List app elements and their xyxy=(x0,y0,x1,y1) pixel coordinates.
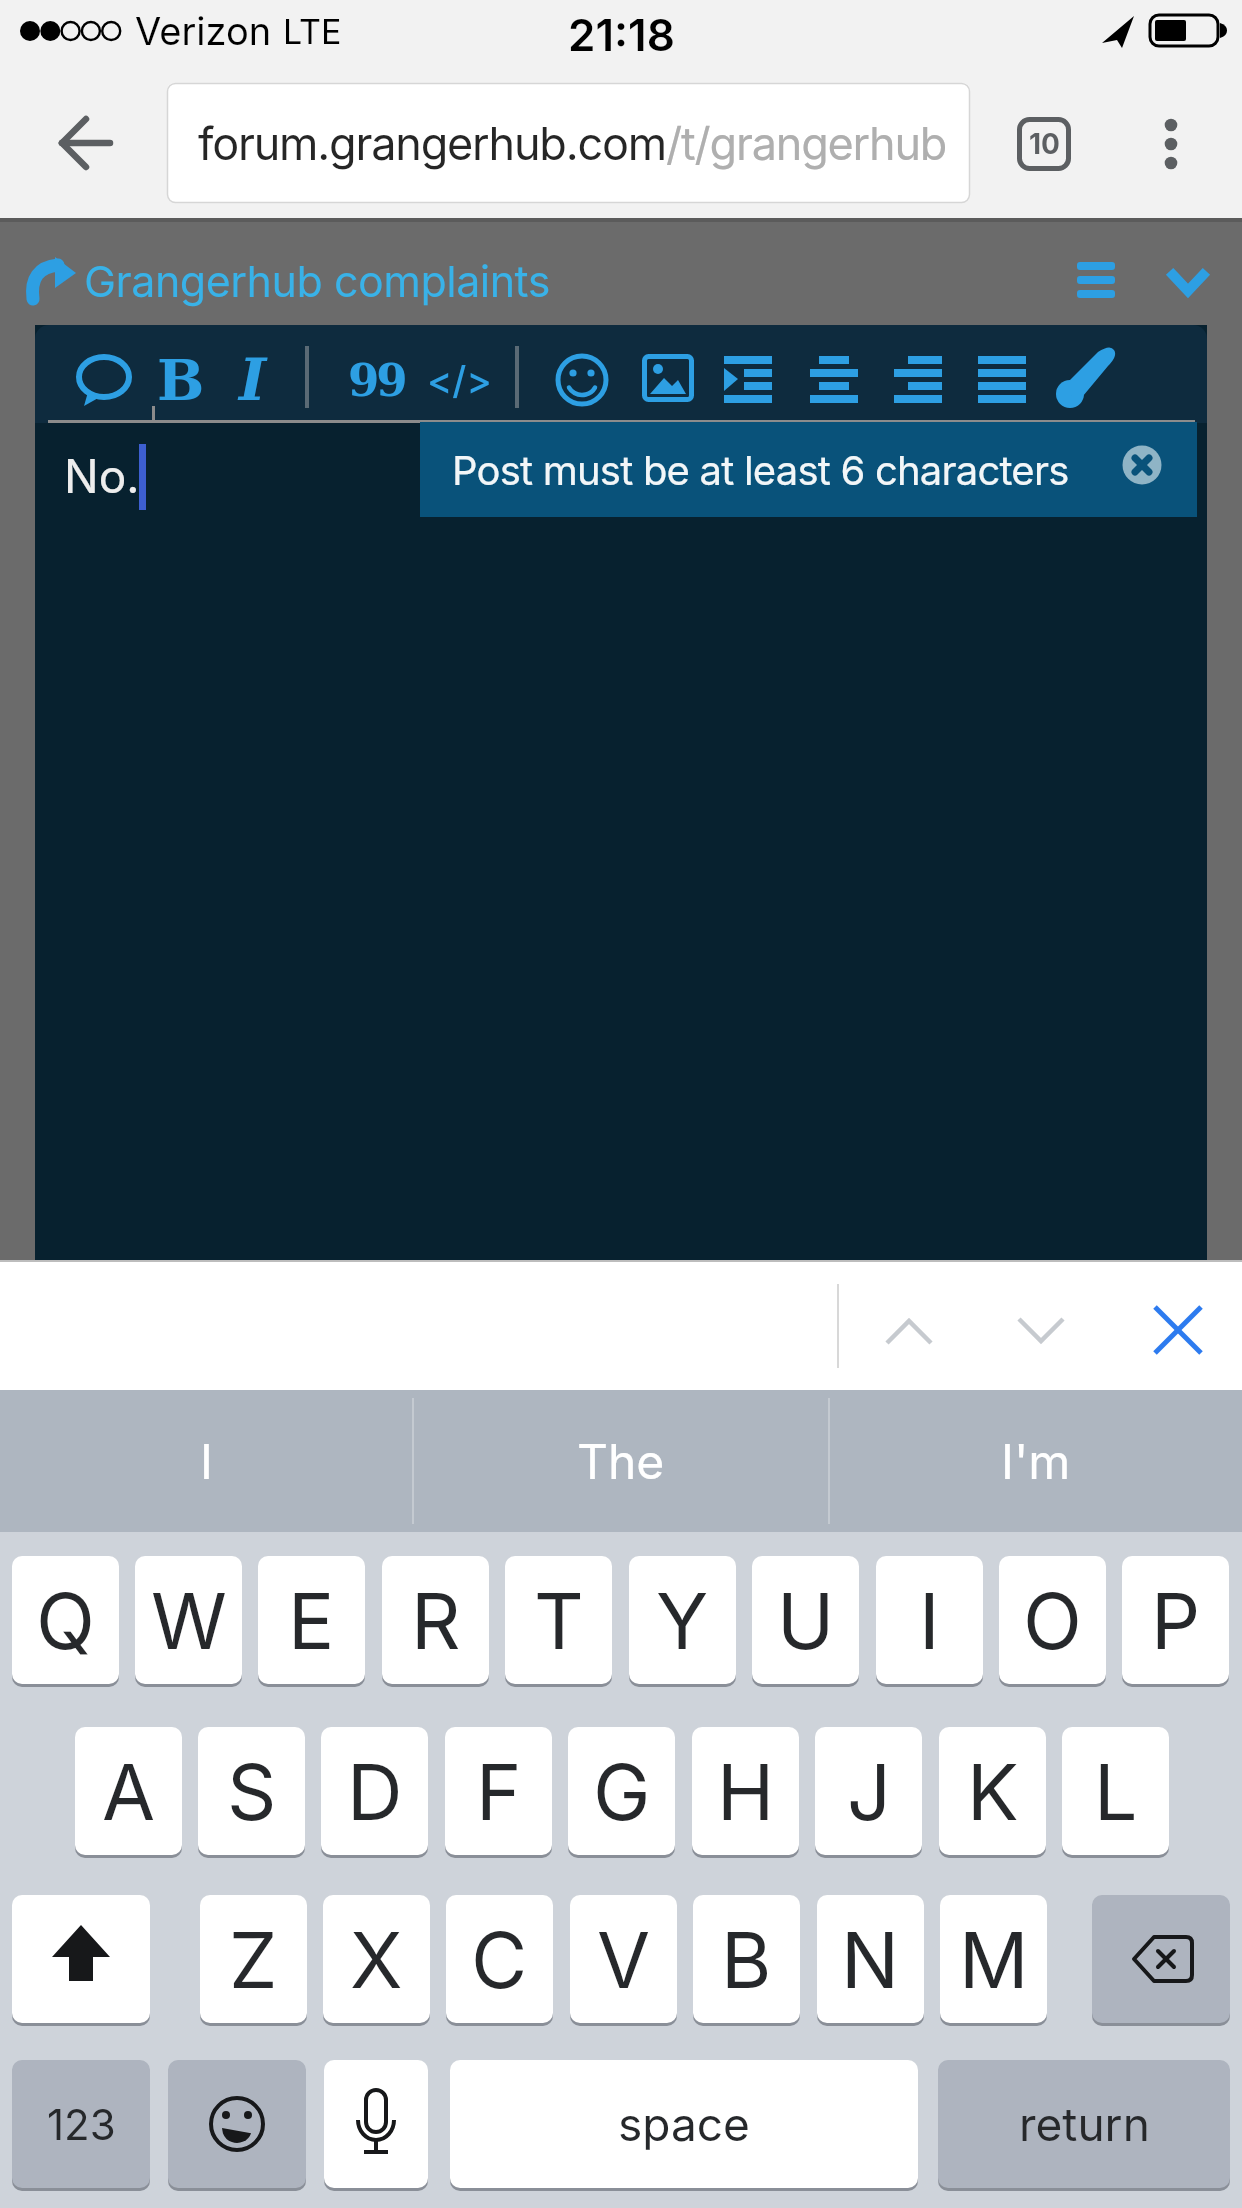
staticText: I xyxy=(200,1432,213,1490)
staticText: O xyxy=(1023,1574,1082,1667)
button[interactable]: I xyxy=(222,346,284,414)
button[interactable] xyxy=(716,346,786,414)
button[interactable] xyxy=(1128,1272,1228,1380)
button[interactable]: P xyxy=(1122,1556,1229,1684)
staticText: B xyxy=(721,1913,772,2006)
staticText: M xyxy=(959,1913,1029,2006)
staticText: G xyxy=(593,1745,651,1838)
staticText: L xyxy=(1094,1745,1138,1838)
button[interactable]: M xyxy=(940,1895,1047,2023)
button[interactable] xyxy=(548,346,616,414)
button[interactable]: O xyxy=(999,1556,1106,1684)
button[interactable]: The xyxy=(414,1390,828,1532)
button[interactable] xyxy=(1110,432,1180,502)
staticText: B xyxy=(157,347,205,413)
button[interactable]: V xyxy=(570,1895,677,2023)
staticText: The xyxy=(577,1432,665,1490)
staticText: W xyxy=(151,1574,227,1667)
staticText: 123 xyxy=(47,2099,116,2150)
staticText: Q xyxy=(36,1574,95,1667)
staticText: Y xyxy=(656,1574,709,1667)
button[interactable]: I'm xyxy=(830,1390,1242,1532)
staticText: A xyxy=(102,1745,156,1838)
button[interactable]: W xyxy=(135,1556,242,1684)
button[interactable] xyxy=(800,346,870,414)
button[interactable]: F xyxy=(445,1727,552,1855)
button[interactable]: T xyxy=(505,1556,612,1684)
staticText: Post must be at least 6 characters xyxy=(452,446,1069,494)
staticText: </> xyxy=(427,357,492,403)
button[interactable] xyxy=(968,346,1038,414)
button[interactable]: S xyxy=(198,1727,305,1855)
staticText: X xyxy=(350,1913,403,2006)
staticText: space xyxy=(618,2096,750,2152)
button[interactable]: G xyxy=(568,1727,675,1855)
button[interactable]: return xyxy=(938,2060,1230,2188)
button[interactable] xyxy=(66,346,138,414)
button[interactable] xyxy=(324,2060,428,2188)
button[interactable] xyxy=(168,2060,306,2188)
button[interactable]: A xyxy=(75,1727,182,1855)
button[interactable]: B xyxy=(150,346,212,414)
button[interactable]: L xyxy=(1062,1727,1169,1855)
staticText: Verizon xyxy=(135,8,272,54)
staticText: V xyxy=(597,1913,651,2006)
button[interactable] xyxy=(1150,246,1230,316)
staticText: LTE xyxy=(283,11,342,52)
staticText: U xyxy=(777,1574,835,1667)
button[interactable]: H xyxy=(692,1727,799,1855)
staticText: J xyxy=(847,1745,891,1838)
button[interactable] xyxy=(40,98,130,188)
button[interactable]: U xyxy=(752,1556,859,1684)
button[interactable]: D xyxy=(321,1727,428,1855)
button[interactable]: 99 xyxy=(340,346,412,414)
button[interactable]: Y xyxy=(629,1556,736,1684)
button[interactable]: N xyxy=(817,1895,924,2023)
button[interactable] xyxy=(1050,340,1126,416)
staticText: K xyxy=(967,1745,1019,1838)
staticText: D xyxy=(347,1745,403,1838)
staticText: E xyxy=(288,1574,335,1667)
button[interactable]: Z xyxy=(200,1895,307,2023)
button[interactable] xyxy=(1092,1895,1230,2023)
button[interactable]: C xyxy=(446,1895,553,2023)
staticText: P xyxy=(1151,1574,1201,1667)
button[interactable]: 123 xyxy=(12,2060,150,2188)
staticText: forum.grangerhub.com xyxy=(198,116,666,170)
button[interactable] xyxy=(992,1272,1092,1380)
staticText: return xyxy=(1019,2096,1150,2152)
button[interactable]: Grangerhub complaints xyxy=(84,254,604,308)
staticText: I'm xyxy=(1001,1432,1071,1490)
button[interactable]: R xyxy=(382,1556,489,1684)
staticText: /t/grangerhub xyxy=(666,116,947,170)
staticText: H xyxy=(717,1745,775,1838)
button[interactable] xyxy=(860,1272,960,1380)
button[interactable]: space xyxy=(450,2060,918,2188)
button[interactable] xyxy=(1008,108,1080,180)
button[interactable] xyxy=(1056,246,1136,316)
button[interactable]: J xyxy=(815,1727,922,1855)
button[interactable]: I xyxy=(0,1390,412,1532)
staticText: I xyxy=(239,346,267,414)
staticText: N xyxy=(841,1913,900,2006)
button[interactable] xyxy=(634,346,704,414)
button[interactable]: K xyxy=(939,1727,1046,1855)
staticText: 21:18 xyxy=(568,8,675,56)
button[interactable]: I xyxy=(876,1556,983,1684)
staticText: 10 xyxy=(1029,127,1060,161)
staticText: Z xyxy=(229,1913,278,2006)
staticText: T xyxy=(534,1574,584,1667)
staticText: C xyxy=(471,1913,528,2006)
button[interactable]: B xyxy=(693,1895,800,2023)
button[interactable]: </> xyxy=(424,346,494,414)
button[interactable]: Q xyxy=(12,1556,119,1684)
button[interactable] xyxy=(1140,108,1212,180)
button[interactable] xyxy=(167,83,970,203)
staticText: S xyxy=(227,1745,277,1838)
button[interactable] xyxy=(12,1895,150,2023)
button[interactable]: E xyxy=(258,1556,365,1684)
button[interactable] xyxy=(884,346,954,414)
button[interactable]: X xyxy=(323,1895,430,2023)
staticText: Grangerhub complaints xyxy=(84,255,550,307)
staticText: F xyxy=(476,1745,522,1838)
